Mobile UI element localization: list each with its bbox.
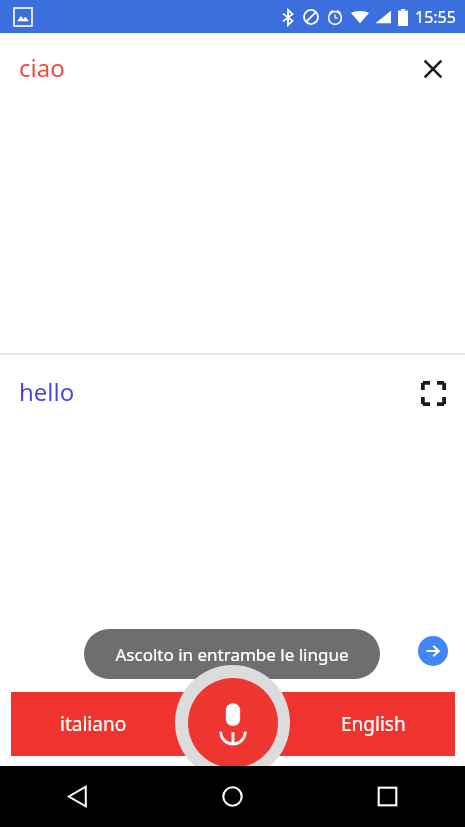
button[interactable]: hello: [0, 355, 465, 827]
staticText: ciao: [19, 51, 65, 84]
button[interactable]: Back: [0, 766, 155, 827]
button[interactable]: Next: [418, 636, 448, 666]
button[interactable]: Speak: [175, 665, 290, 780]
button[interactable]: ciao: [0, 33, 465, 353]
staticText: hello: [19, 375, 75, 408]
staticText: English: [341, 711, 406, 737]
staticText: Ascolto in entrambe le lingue: [115, 643, 349, 666]
button[interactable]: Ascolto in entrambe le lingue: [84, 629, 380, 679]
staticText: italiano: [60, 711, 127, 737]
staticText: 15:55: [415, 6, 456, 28]
button[interactable]: Home: [155, 766, 310, 827]
button[interactable]: Fullscreen: [409, 369, 457, 417]
button[interactable]: English: [291, 692, 455, 756]
button[interactable]: Clear: [409, 45, 457, 93]
button[interactable]: Recents: [310, 766, 465, 827]
button[interactable]: italiano: [11, 692, 175, 756]
